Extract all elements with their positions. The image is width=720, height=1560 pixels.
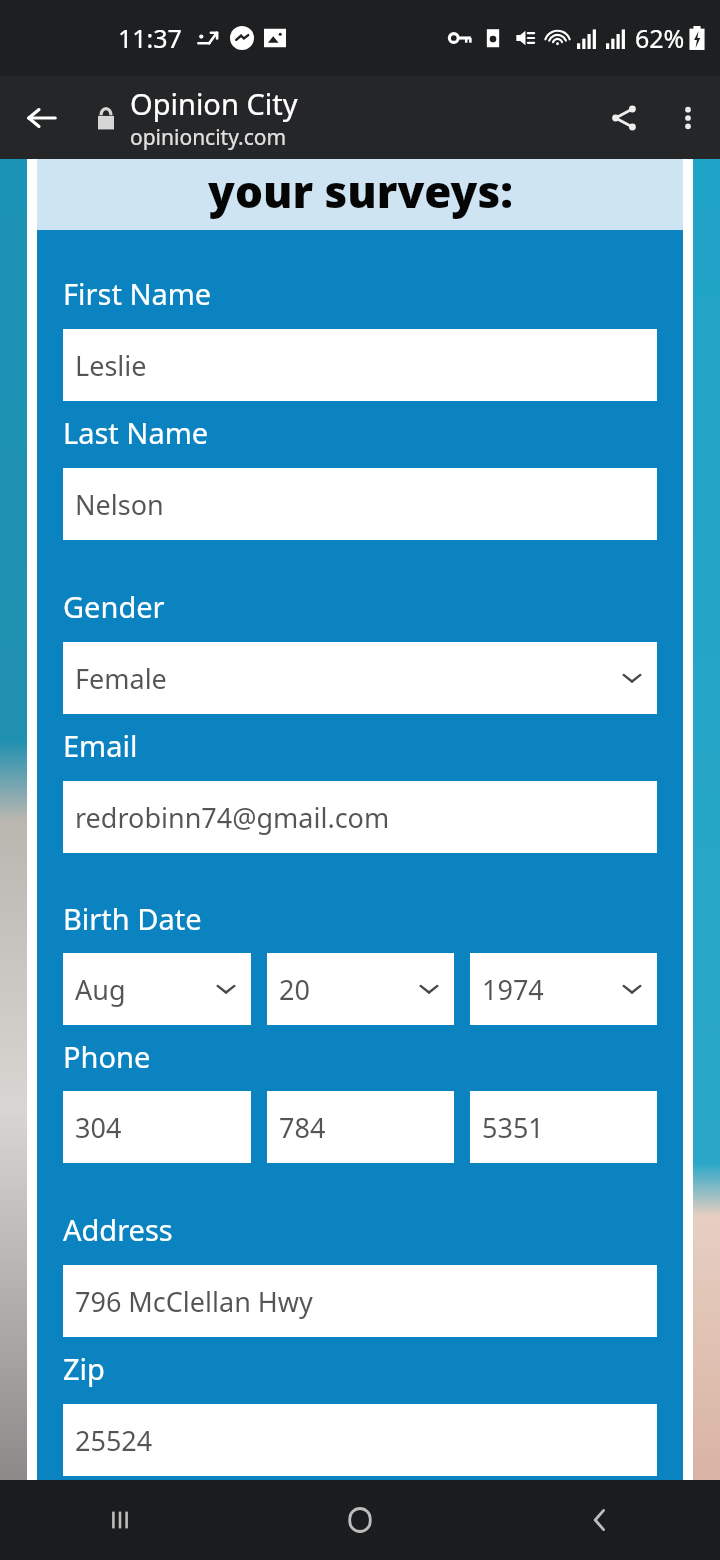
staticText: Leslie	[75, 347, 147, 384]
button[interactable]: Back	[12, 88, 72, 148]
button[interactable]: Share	[592, 86, 656, 150]
button[interactable]: Aug	[63, 953, 251, 1025]
button[interactable]: 20	[267, 953, 454, 1025]
button[interactable]: Back	[480, 1480, 720, 1560]
button[interactable]: Home	[240, 1480, 480, 1560]
staticText: opinioncity.com	[130, 123, 287, 152]
staticText: Last Name	[63, 413, 209, 452]
staticText: your surveys:	[208, 161, 513, 221]
staticText: 5351	[482, 1109, 544, 1146]
button[interactable]: Female	[63, 642, 657, 714]
staticText: Email	[63, 726, 138, 765]
button[interactable]: 5351	[470, 1091, 657, 1163]
staticText: 20	[279, 971, 310, 1008]
staticText: Nelson	[75, 486, 164, 523]
staticText: 796 McClellan Hwy	[75, 1283, 313, 1320]
button[interactable]: 25524	[63, 1404, 657, 1476]
staticText: 62%	[635, 21, 685, 55]
button[interactable]: Opinion City	[96, 84, 298, 152]
button[interactable]: Leslie	[63, 329, 657, 401]
button[interactable]: More options	[656, 86, 720, 150]
staticText: Aug	[75, 971, 126, 1008]
staticText: Opinion City	[130, 84, 298, 123]
button[interactable]: 784	[267, 1091, 454, 1163]
button[interactable]: 304	[63, 1091, 251, 1163]
staticText: Address	[63, 1210, 173, 1249]
staticText: 25524	[75, 1422, 153, 1459]
button[interactable]: Recent apps	[0, 1480, 240, 1560]
button[interactable]: redrobinn74@gmail.com	[63, 781, 657, 853]
button[interactable]: 1974	[470, 953, 657, 1025]
staticText: redrobinn74@gmail.com	[75, 799, 390, 836]
staticText: Phone	[63, 1037, 151, 1076]
staticText: Gender	[63, 587, 165, 626]
staticText: First Name	[63, 274, 212, 313]
staticText: 304	[75, 1109, 122, 1146]
staticText: Female	[75, 660, 167, 697]
staticText: Zip	[63, 1349, 105, 1388]
staticText: 11:37	[118, 21, 182, 55]
staticText: 1974	[482, 971, 544, 1008]
button[interactable]: Nelson	[63, 468, 657, 540]
staticText: 784	[279, 1109, 326, 1146]
button[interactable]: 796 McClellan Hwy	[63, 1265, 657, 1337]
staticText: Birth Date	[63, 899, 202, 938]
